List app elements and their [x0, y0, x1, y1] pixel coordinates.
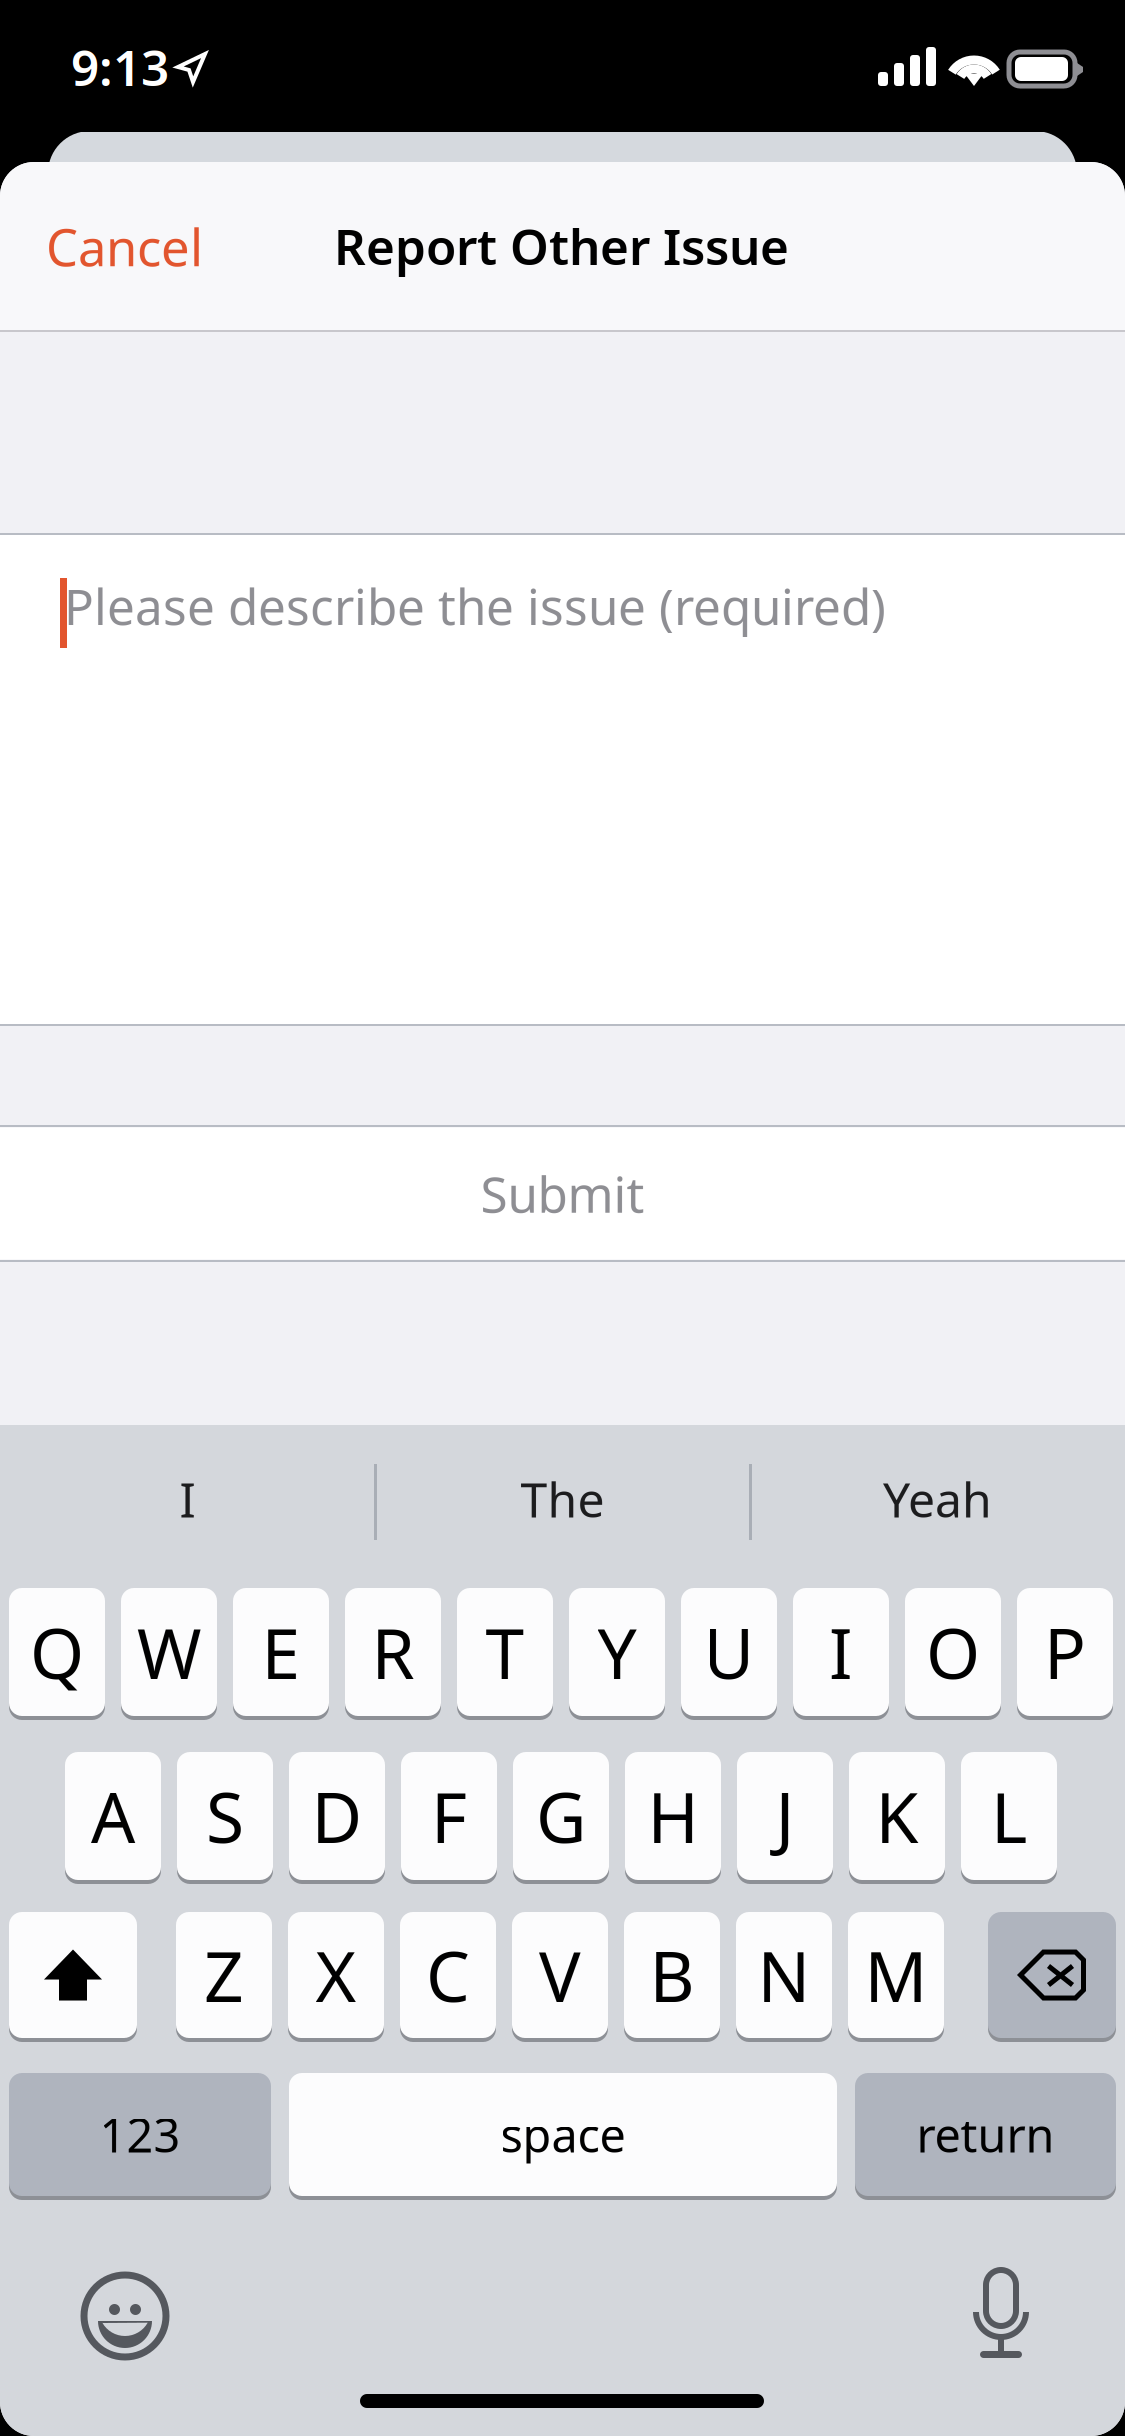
staticText: N	[757, 1929, 810, 2021]
staticText: Report Other Issue	[334, 213, 789, 278]
staticText: K	[875, 1770, 918, 1862]
button[interactable]: R	[345, 1586, 441, 1718]
staticText: The	[520, 1467, 604, 1531]
button[interactable]: F	[401, 1750, 497, 1882]
staticText: G	[536, 1770, 586, 1862]
staticText: Please describe the issue (required)	[64, 573, 886, 638]
staticText: P	[1044, 1606, 1086, 1698]
staticText: C	[426, 1929, 470, 2021]
button[interactable]: C	[400, 1910, 496, 2040]
button[interactable]: Yeah	[750, 1425, 1125, 1573]
staticText: Q	[30, 1606, 84, 1698]
staticText: return	[916, 2103, 1054, 2165]
button[interactable]: S	[177, 1750, 273, 1882]
button[interactable]: 123	[9, 2071, 271, 2198]
button[interactable]: K	[849, 1750, 945, 1882]
staticText: 123	[99, 2103, 180, 2165]
staticText: I	[179, 1467, 195, 1531]
staticText: T	[485, 1606, 524, 1698]
button[interactable]: H	[625, 1750, 721, 1882]
button[interactable]: Q	[9, 1586, 105, 1718]
button[interactable]: T	[457, 1586, 553, 1718]
staticText: D	[311, 1770, 362, 1862]
button[interactable]: L	[961, 1750, 1057, 1882]
staticText: R	[371, 1606, 414, 1698]
button[interactable]: I	[793, 1586, 889, 1718]
button[interactable]: Submit	[0, 1127, 1125, 1259]
button[interactable]: D	[289, 1750, 385, 1882]
button[interactable]: W	[121, 1586, 217, 1718]
staticText: Cancel	[46, 213, 203, 280]
staticText: A	[91, 1770, 135, 1862]
staticText: X	[315, 1929, 356, 2021]
staticText: O	[926, 1606, 980, 1698]
staticText: Z	[204, 1929, 244, 2021]
button[interactable]: X	[288, 1910, 384, 2040]
button[interactable]: B	[624, 1910, 720, 2040]
button[interactable]: A	[65, 1750, 161, 1882]
button[interactable]: E	[233, 1586, 329, 1718]
staticText: 9:13	[71, 34, 169, 99]
button[interactable]: J	[737, 1750, 833, 1882]
button[interactable]: Shift	[9, 1910, 137, 2040]
staticText: L	[991, 1770, 1027, 1862]
button[interactable]: I	[0, 1425, 375, 1573]
button[interactable]: Z	[176, 1910, 272, 2040]
staticText: Y	[597, 1606, 636, 1698]
staticText: space	[500, 2103, 625, 2165]
button[interactable]: M	[848, 1910, 944, 2040]
button[interactable]: Delete	[988, 1910, 1116, 2040]
staticText: W	[137, 1606, 201, 1698]
button[interactable]: U	[681, 1586, 777, 1718]
button[interactable]: V	[512, 1910, 608, 2040]
staticText: E	[261, 1606, 300, 1698]
staticText: B	[649, 1929, 694, 2021]
button[interactable]: Dictation	[972, 2270, 1030, 2358]
button[interactable]: O	[905, 1586, 1001, 1718]
button[interactable]: Y	[569, 1586, 665, 1718]
staticText: V	[539, 1929, 581, 2021]
staticText: M	[864, 1929, 927, 2021]
button[interactable]: The	[375, 1425, 750, 1573]
staticText: S	[206, 1770, 244, 1862]
staticText: Yeah	[883, 1467, 992, 1531]
button[interactable]: Emoji keyboard	[84, 2275, 166, 2357]
button[interactable]: N	[736, 1910, 832, 2040]
staticText: U	[703, 1606, 754, 1698]
button[interactable]: space	[289, 2071, 837, 2198]
button[interactable]: Cancel	[0, 163, 254, 293]
button[interactable]: P	[1017, 1586, 1113, 1718]
button[interactable]: G	[513, 1750, 609, 1882]
staticText: J	[775, 1770, 794, 1862]
staticText: I	[829, 1606, 853, 1698]
staticText: Submit	[480, 1161, 644, 1226]
staticText: H	[647, 1770, 698, 1862]
staticText: F	[431, 1770, 467, 1862]
button[interactable]: return	[855, 2071, 1116, 2198]
